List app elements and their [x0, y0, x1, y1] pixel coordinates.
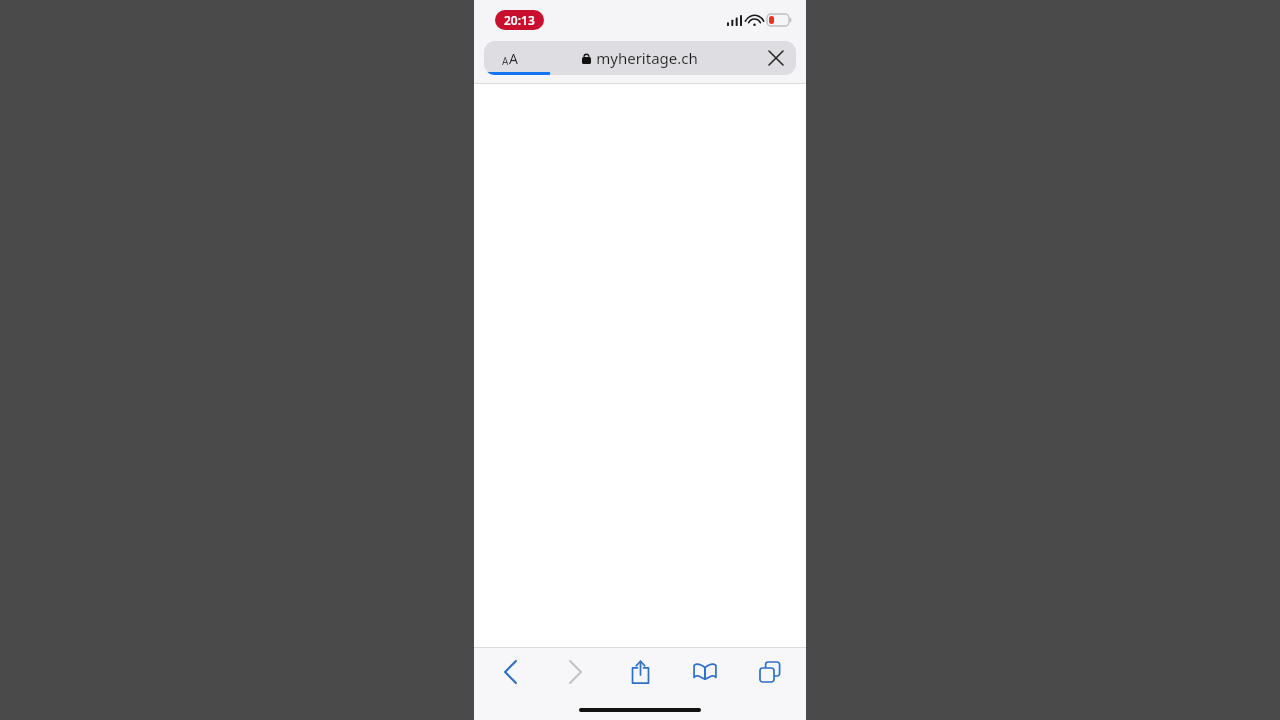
button[interactable]: Back [486, 649, 534, 695]
staticText: A [502, 54, 509, 68]
button[interactable]: myheritage.ch [582, 48, 698, 68]
staticText: A [509, 49, 518, 68]
staticText: 20:13 [504, 12, 535, 28]
button[interactable]: Share [616, 649, 664, 695]
button[interactable]: Page settings [484, 41, 536, 75]
staticText: myheritage.ch [596, 48, 698, 68]
button[interactable]: Tabs [746, 649, 794, 695]
button[interactable]: Forward [551, 649, 599, 695]
button[interactable]: 20:13 [495, 10, 544, 30]
button[interactable]: Bookmarks [681, 649, 729, 695]
button[interactable]: Stop loading [756, 41, 796, 75]
